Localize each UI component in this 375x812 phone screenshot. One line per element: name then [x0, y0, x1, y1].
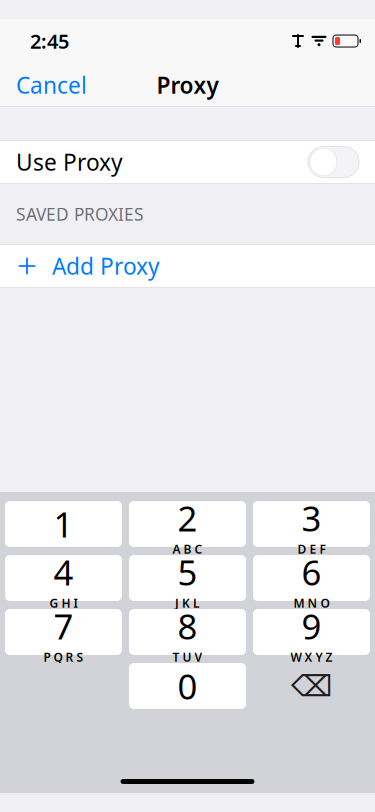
staticText: 8: [177, 603, 197, 649]
staticText: SAVED PROXIES: [16, 202, 144, 225]
button[interactable]: 8: [129, 609, 246, 655]
staticText: M N O: [293, 595, 329, 611]
button[interactable]: 9: [253, 609, 370, 655]
button[interactable]: Add Proxy: [0, 244, 375, 288]
button[interactable]: 0: [129, 663, 246, 709]
button[interactable]: 5: [129, 555, 246, 601]
button[interactable]: 7: [5, 609, 122, 655]
staticText: P Q R S: [43, 649, 83, 665]
staticText: 3: [301, 495, 321, 541]
staticText: 2:45: [30, 28, 69, 54]
staticText: 6: [301, 549, 321, 595]
staticText: 5: [177, 549, 197, 595]
button[interactable]: Cancel: [0, 63, 103, 107]
button[interactable]: 3: [253, 501, 370, 547]
button[interactable]: Delete: [253, 663, 370, 709]
button[interactable]: 6: [253, 555, 370, 601]
button[interactable]: 1: [5, 501, 122, 547]
staticText: ⌫: [291, 669, 332, 703]
staticText: Cancel: [16, 70, 87, 100]
staticText: 1: [53, 501, 73, 547]
staticText: Use Proxy: [16, 147, 123, 177]
staticText: D E F: [297, 541, 325, 557]
staticText: Add Proxy: [52, 251, 160, 281]
staticText: 9: [301, 603, 321, 649]
staticText: 7: [53, 603, 73, 649]
staticText: W X Y Z: [290, 649, 332, 665]
staticText: Proxy: [156, 70, 218, 100]
button[interactable]: Use Proxy: [308, 146, 359, 177]
staticText: 0: [177, 663, 197, 709]
staticText: T U V: [172, 649, 202, 665]
staticText: 2: [177, 495, 197, 541]
staticText: A B C: [172, 541, 202, 557]
button[interactable]: 2: [129, 501, 246, 547]
staticText: G H I: [49, 595, 77, 611]
staticText: 4: [53, 549, 73, 595]
staticText: J K L: [175, 595, 200, 611]
button[interactable]: 4: [5, 555, 122, 601]
